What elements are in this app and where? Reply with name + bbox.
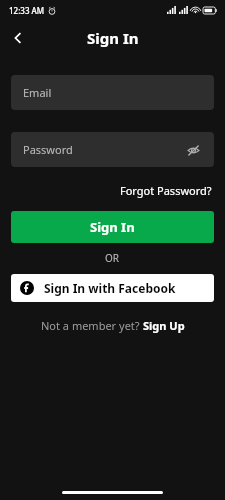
button[interactable]: Back xyxy=(4,24,32,52)
staticText: Sign In xyxy=(90,218,135,236)
button[interactable]: Sign In xyxy=(11,211,214,243)
button[interactable]: Toggle password visibility xyxy=(184,141,202,159)
button[interactable]: Not a member yet? xyxy=(38,315,188,336)
staticText: Email xyxy=(23,85,52,100)
staticText: Sign Up xyxy=(143,318,185,333)
staticText: Forgot Password? xyxy=(120,183,212,198)
button[interactable]: Email xyxy=(11,75,214,110)
staticText: Password xyxy=(23,142,73,157)
staticText: Sign In xyxy=(87,28,139,48)
staticText: Not a member yet? xyxy=(41,318,143,333)
button[interactable]: Password xyxy=(11,132,214,167)
button[interactable]: Forgot Password? xyxy=(118,181,214,200)
staticText: OR xyxy=(105,251,120,265)
button[interactable]: Sign In with Facebook xyxy=(11,274,214,302)
staticText: Sign In with Facebook xyxy=(44,280,176,296)
staticText: 12:33 AM xyxy=(9,5,45,16)
